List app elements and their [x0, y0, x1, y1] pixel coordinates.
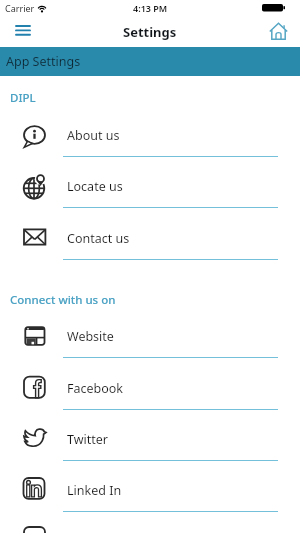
staticText: Website: [67, 328, 114, 345]
button[interactable]: Website: [0, 311, 300, 362]
staticText: Connect with us on: [10, 292, 116, 308]
staticText: App Settings: [6, 53, 81, 70]
staticText: Contact us: [67, 230, 130, 247]
staticText: 4:13 PM: [133, 2, 168, 14]
staticText: Twitter: [67, 431, 108, 448]
button[interactable]: Contact us: [0, 213, 300, 264]
button[interactable]: Locate us: [0, 161, 300, 212]
staticText: About us: [67, 127, 120, 144]
staticText: Facebook: [67, 380, 124, 397]
button[interactable]: [264, 17, 292, 45]
button[interactable]: Twitter: [0, 414, 300, 465]
staticText: Settings: [123, 23, 177, 41]
button[interactable]: Linked In: [0, 465, 300, 516]
button[interactable]: Facebook: [0, 363, 300, 414]
staticText: DIPL: [10, 90, 36, 106]
staticText: Linked In: [67, 482, 122, 499]
staticText: Carrier: [5, 2, 35, 14]
staticText: Locate us: [67, 178, 123, 195]
button[interactable]: [8, 17, 38, 43]
button[interactable]: About us: [0, 110, 300, 161]
